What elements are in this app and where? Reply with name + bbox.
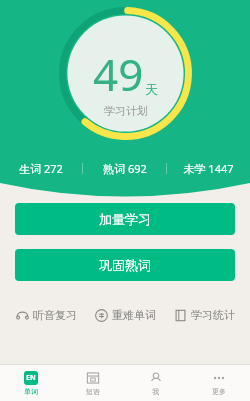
staticText: 重难单词 xyxy=(112,308,156,322)
button[interactable]: 熟词 692 xyxy=(83,157,166,180)
staticText: 巩固熟词 xyxy=(99,257,151,273)
button[interactable]: 重难单词 xyxy=(86,304,165,326)
staticText: 天 xyxy=(145,81,158,97)
staticText: EN xyxy=(26,373,36,383)
button[interactable]: 短语 xyxy=(62,365,124,401)
staticText: 未学 1447 xyxy=(183,161,234,176)
staticText: 单词 xyxy=(24,387,38,396)
staticText: 学习统计 xyxy=(191,308,235,322)
button[interactable]: 学习统计 xyxy=(165,304,244,326)
staticText: 熟词 692 xyxy=(103,161,147,176)
staticText: 更多 xyxy=(212,387,226,396)
staticText: 49 xyxy=(93,44,144,104)
button[interactable]: 巩固熟词 xyxy=(15,249,235,281)
button[interactable]: 未学 1447 xyxy=(167,157,250,180)
button[interactable]: 生词 272 xyxy=(0,157,82,180)
button[interactable]: 更多 xyxy=(187,365,250,401)
button[interactable]: 我 xyxy=(124,365,187,401)
staticText: 我 xyxy=(152,387,159,396)
staticText: 加量学习 xyxy=(99,211,151,227)
staticText: 学习计划 xyxy=(104,104,148,118)
staticText: 短语 xyxy=(86,387,100,396)
button[interactable]: 听音复习 xyxy=(6,304,86,326)
button[interactable]: 加量学习 xyxy=(15,203,235,235)
staticText: 听音复习 xyxy=(33,308,77,322)
staticText: 生词 272 xyxy=(19,161,63,176)
button[interactable]: 单词 xyxy=(0,365,62,401)
